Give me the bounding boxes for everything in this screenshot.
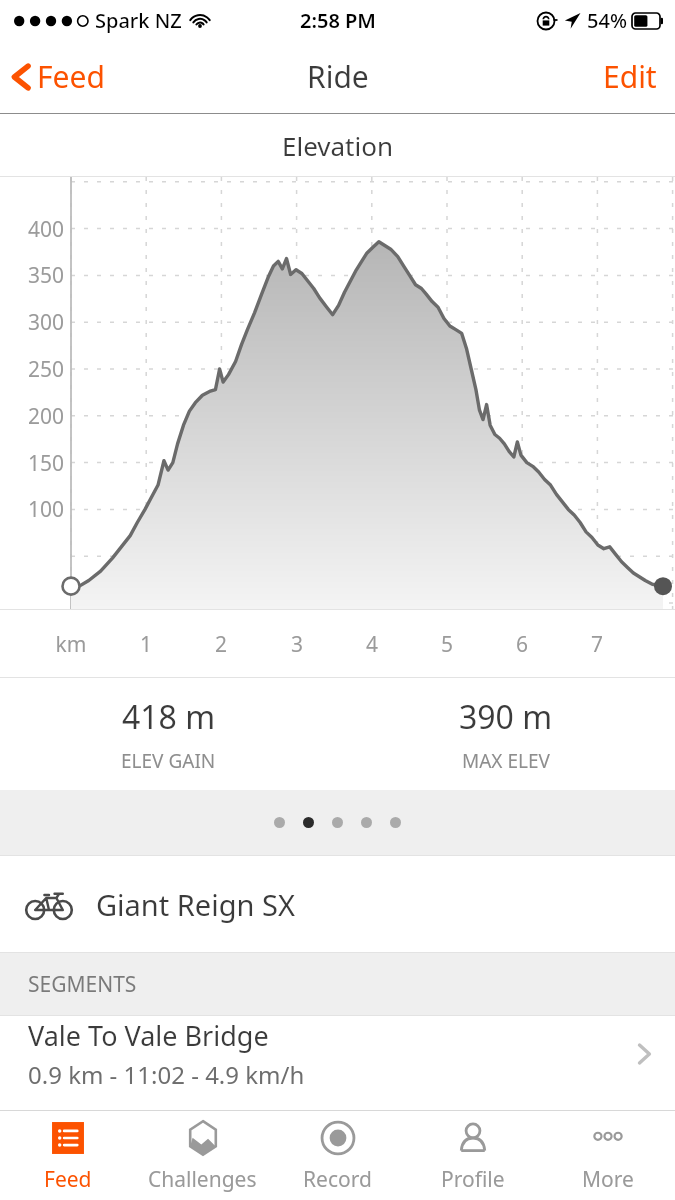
staticText: 200 [16, 402, 64, 431]
staticText: 54% [587, 7, 627, 34]
staticText: 2 [191, 630, 251, 659]
button[interactable]: Challenges [135, 1111, 270, 1200]
button[interactable]: Profile [405, 1111, 540, 1200]
staticText: Vale To Vale Bridge [28, 1017, 269, 1054]
staticText: 3 [267, 630, 327, 659]
staticText: Record [303, 1165, 372, 1194]
staticText: 6 [492, 630, 552, 659]
staticText: More [582, 1165, 634, 1194]
staticText: 300 [16, 308, 64, 337]
staticText: 350 [16, 261, 64, 290]
staticText: 7 [567, 630, 627, 659]
button[interactable]: More [540, 1111, 675, 1200]
staticText: 250 [16, 355, 64, 384]
staticText: Feed [44, 1165, 92, 1194]
staticText: 2:58 PM [300, 7, 376, 34]
staticText: 4 [342, 630, 402, 659]
button[interactable]: Edit [585, 46, 675, 107]
button[interactable]: Record [270, 1111, 405, 1200]
staticText: Feed [37, 56, 105, 97]
staticText: Challenges [148, 1165, 257, 1194]
staticText: MAX ELEV [462, 748, 550, 774]
staticText: Profile [441, 1165, 505, 1194]
button[interactable]: Feed [0, 1111, 135, 1200]
staticText: Spark NZ [95, 7, 182, 34]
staticText: 400 [16, 215, 64, 244]
staticText: Elevation [282, 128, 393, 163]
staticText: Ride [307, 56, 369, 97]
staticText: 150 [16, 449, 64, 478]
staticText: Giant Reign SX [96, 885, 295, 924]
staticText: 1 [116, 630, 176, 659]
staticText: SEGMENTS [28, 970, 137, 999]
staticText: 0.9 km - 11:02 - 4.9 km/h [28, 1058, 305, 1091]
staticText: Edit [603, 56, 657, 97]
staticText: km [41, 630, 101, 659]
button[interactable]: Feed [0, 48, 119, 105]
button[interactable]: Giant Reign SX [0, 856, 675, 952]
button[interactable]: Vale To Vale Bridge [0, 1016, 675, 1092]
staticText: ELEV GAIN [121, 748, 216, 774]
staticText: 5 [417, 630, 477, 659]
staticText: 100 [16, 495, 64, 524]
staticText: 390 m [459, 695, 553, 739]
staticText: 418 m [122, 695, 216, 739]
